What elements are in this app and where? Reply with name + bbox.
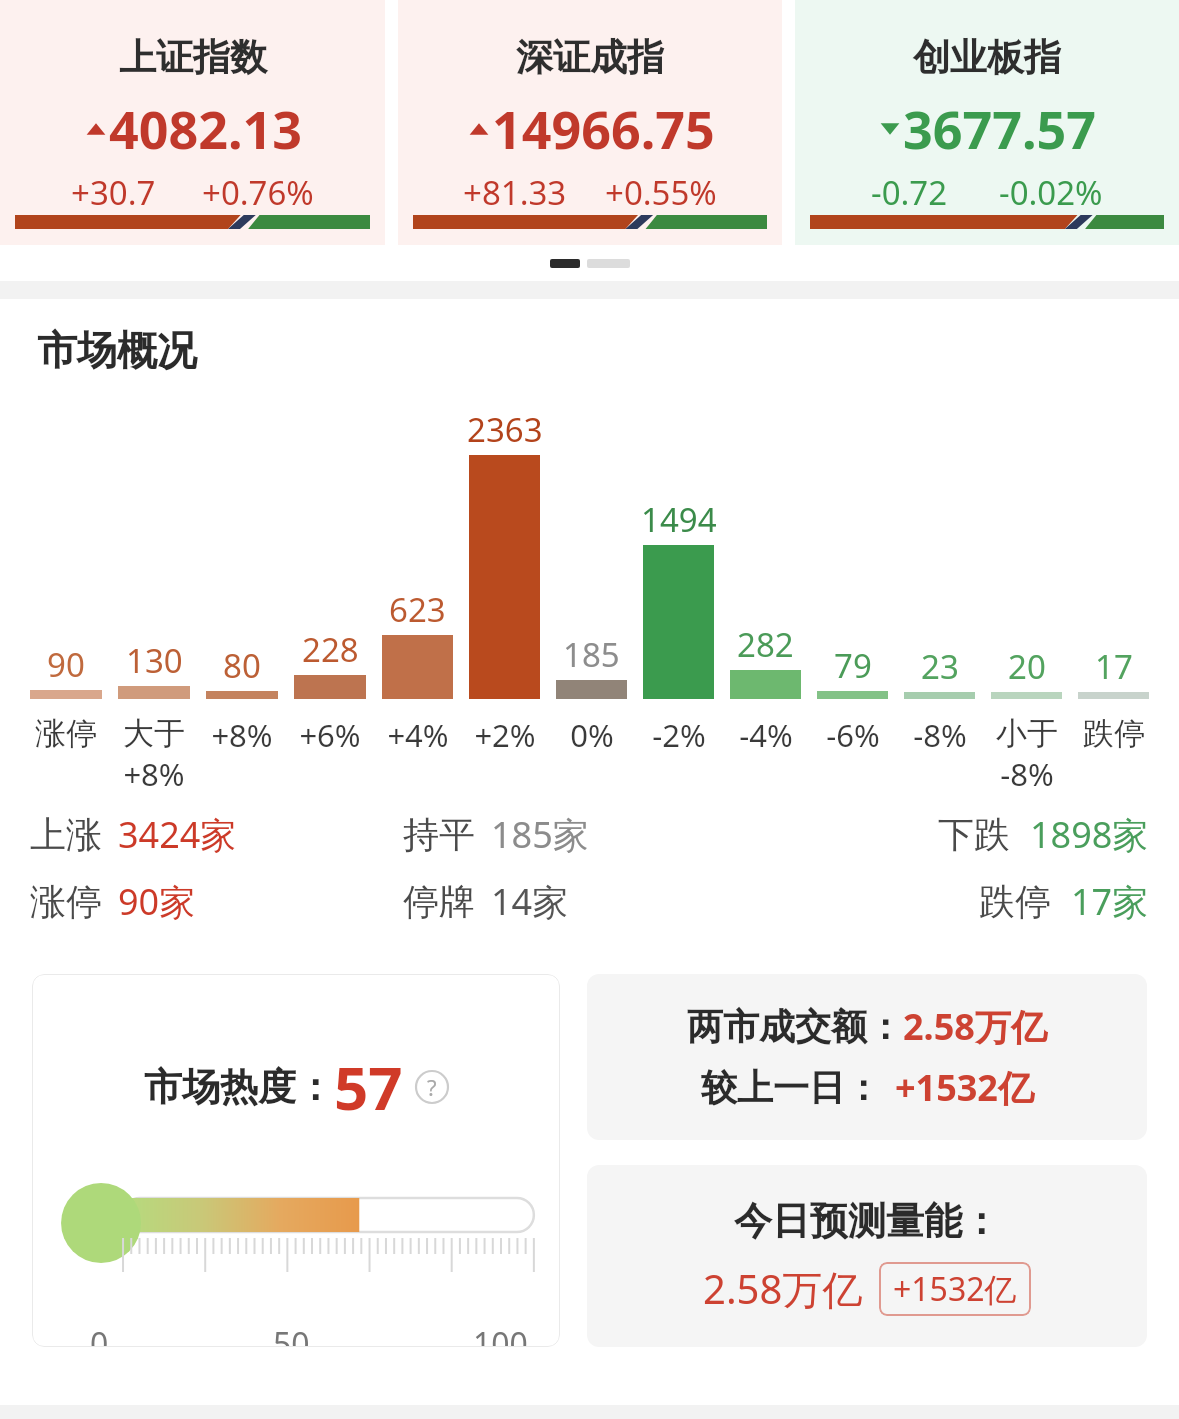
staticText: 80: [223, 643, 261, 688]
staticText: 17: [1095, 644, 1133, 689]
button[interactable]: 创业板指: [795, 0, 1179, 245]
staticText: 市场热度：: [144, 1063, 334, 1111]
staticText: +81.33: [463, 170, 567, 215]
staticText: 23: [921, 644, 959, 689]
staticText: 较上一日：: [701, 1065, 881, 1110]
staticText: -6%: [826, 714, 880, 756]
staticText: 跌停: [1083, 714, 1145, 753]
staticText: +0.55%: [605, 170, 717, 215]
staticText: 57: [334, 1046, 403, 1128]
staticText: 20: [1008, 644, 1046, 689]
button[interactable]: 帮助说明: [415, 1070, 449, 1104]
staticText: +6%: [299, 714, 361, 756]
staticText: 2.58万亿: [903, 1002, 1047, 1051]
staticText: 两市成交额：: [687, 1004, 903, 1049]
staticText: 90: [47, 642, 85, 687]
staticText: 下跌: [938, 812, 1010, 857]
staticText: +8%: [211, 714, 273, 756]
staticText: 创业板指: [913, 34, 1061, 81]
staticText: 3424家: [118, 810, 237, 859]
staticText: 50: [273, 1322, 310, 1347]
button[interactable]: 上证指数: [0, 0, 385, 245]
staticText: +1532亿: [893, 1267, 1017, 1311]
staticText: 282: [737, 622, 794, 667]
staticText: ?: [427, 1072, 437, 1102]
button[interactable]: 两市成交额：: [587, 974, 1147, 1140]
staticText: 小于: [996, 714, 1058, 753]
staticText: 今日预测量能：: [734, 1197, 1000, 1245]
staticText: 228: [302, 627, 359, 672]
button[interactable]: 市场热度：: [32, 974, 560, 1347]
staticText: 4082.13: [109, 93, 303, 164]
staticText: 185: [563, 632, 620, 677]
staticText: -8%: [913, 714, 967, 756]
staticText: +0.76%: [202, 170, 314, 215]
staticText: 623: [389, 587, 446, 632]
staticText: -4%: [739, 714, 793, 756]
staticText: 停牌: [403, 879, 475, 924]
staticText: 涨停: [35, 714, 97, 753]
staticText: 2.58万亿: [703, 1261, 863, 1316]
staticText: -2%: [652, 714, 706, 756]
staticText: 上证指数: [119, 34, 267, 81]
staticText: 深证成指: [516, 34, 664, 81]
staticText: 90家: [118, 877, 196, 926]
staticText: 3677.57: [903, 93, 1097, 164]
staticText: 100: [473, 1322, 528, 1347]
staticText: -0.72: [871, 170, 948, 215]
staticText: +4%: [387, 714, 449, 756]
staticText: 持平: [403, 812, 475, 857]
staticText: +1532亿: [895, 1063, 1034, 1112]
staticText: 14家: [491, 877, 569, 926]
staticText: 0%: [570, 714, 614, 756]
staticText: 130: [126, 638, 183, 683]
staticText: -0.02%: [999, 170, 1103, 215]
staticText: 上涨: [30, 812, 102, 857]
staticText: 14966.75: [492, 93, 715, 164]
staticText: 跌停: [979, 879, 1051, 924]
button[interactable]: 今日预测量能：: [587, 1165, 1147, 1347]
button[interactable]: 深证成指: [398, 0, 782, 245]
staticText: 17家: [1071, 877, 1149, 926]
staticText: 0: [90, 1322, 109, 1347]
staticText: +2%: [474, 714, 536, 756]
staticText: -8%: [1000, 753, 1054, 786]
staticText: 1898家: [1030, 810, 1149, 859]
staticText: 市场概况: [37, 325, 197, 375]
staticText: 1494: [641, 497, 717, 542]
staticText: 大于: [123, 714, 185, 753]
staticText: 185家: [491, 810, 589, 859]
staticText: 2363: [467, 407, 543, 452]
staticText: +8%: [123, 753, 185, 786]
staticText: 涨停: [30, 879, 102, 924]
staticText: 79: [834, 643, 872, 688]
staticText: +30.7: [71, 170, 156, 215]
